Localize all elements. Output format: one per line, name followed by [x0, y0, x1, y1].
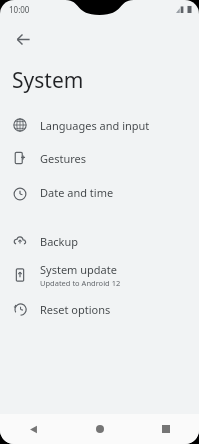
staticText: Languages and input — [40, 118, 150, 133]
button[interactable]: Back — [6, 22, 40, 56]
staticText: Date and time — [40, 185, 114, 200]
button[interactable]: Reset options — [0, 293, 199, 325]
staticText: Gestures — [40, 151, 87, 166]
button[interactable]: Home — [67, 414, 133, 444]
staticText: Updated to Android 12 — [40, 278, 121, 288]
button[interactable]: Back — [0, 414, 67, 444]
staticText: Reset options — [40, 302, 111, 317]
button[interactable]: Languages and input — [0, 109, 199, 141]
staticText: Backup — [40, 234, 79, 249]
staticText: System update — [40, 262, 117, 277]
staticText: System — [12, 66, 84, 95]
staticText: 10:00 — [9, 4, 30, 15]
button[interactable]: Gestures — [0, 141, 199, 175]
button[interactable]: Backup — [0, 225, 199, 257]
button[interactable]: Date and time — [0, 175, 199, 209]
button[interactable]: System update — [0, 257, 199, 293]
button[interactable]: Recent apps — [133, 414, 199, 444]
